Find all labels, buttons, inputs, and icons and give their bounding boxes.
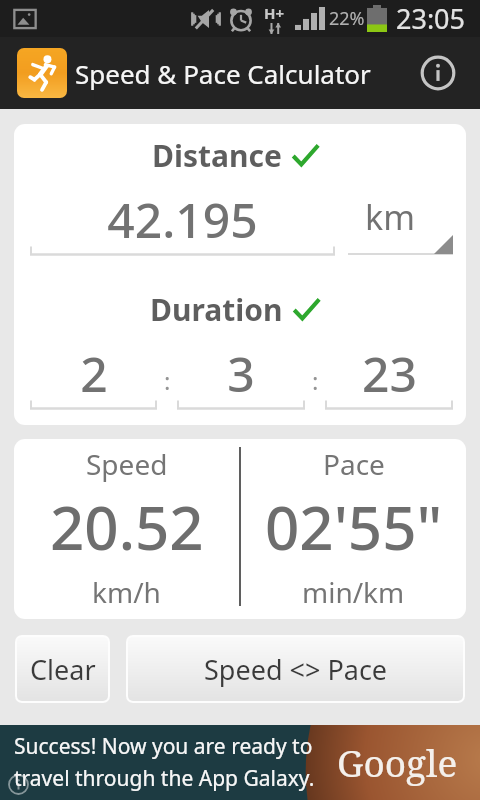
button[interactable]: 3 [177, 341, 305, 409]
button[interactable]: App icon [17, 48, 67, 98]
staticText: 42.195 [107, 187, 258, 252]
button[interactable]: Info [416, 51, 460, 95]
staticText: Duration [150, 289, 283, 330]
staticText: km/h [92, 573, 161, 611]
staticText: 02'55" [265, 486, 443, 568]
staticText: 2 [80, 341, 108, 406]
button[interactable]: Speed <> Pace [128, 637, 463, 701]
button[interactable]: 42.195 [30, 187, 335, 255]
staticText: Success! Now you are ready to [14, 732, 313, 761]
staticText: min/km [302, 573, 405, 611]
staticText: : [164, 364, 171, 397]
staticText: Distance [152, 135, 282, 176]
staticText: Speed [86, 445, 168, 483]
staticText: H+ [264, 3, 285, 23]
button[interactable]: 23 [325, 341, 453, 409]
staticText: Pace [323, 445, 385, 483]
button[interactable]: 2 [30, 341, 157, 409]
staticText: Clear [30, 651, 96, 688]
staticText: 3 [227, 341, 255, 406]
staticText: 23 [362, 341, 417, 406]
staticText: : [312, 364, 319, 397]
staticText: 23:05 [396, 0, 466, 37]
button[interactable]: Success! Now you are ready to [0, 725, 480, 800]
button[interactable]: km [348, 194, 453, 255]
staticText: 22% [329, 6, 365, 31]
staticText: Speed <> Pace [204, 651, 388, 688]
staticText: 20.52 [50, 486, 204, 568]
staticText: Speed & Pace Calculator [75, 56, 371, 91]
staticText: km [365, 194, 415, 240]
staticText: travel through the App Galaxy. [14, 764, 315, 793]
staticText: Google [337, 737, 458, 787]
button[interactable]: Clear [17, 637, 108, 701]
